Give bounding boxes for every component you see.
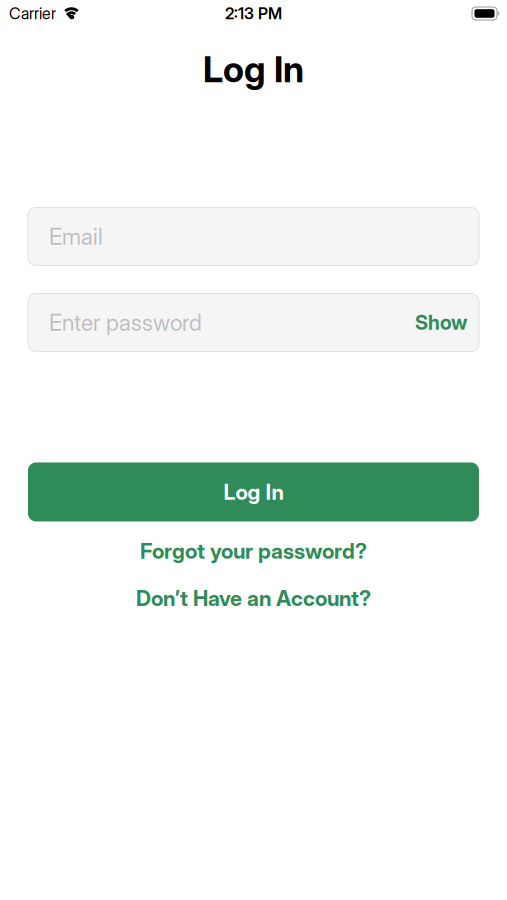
staticText: 2:13 PM <box>225 4 282 23</box>
staticText: Log In <box>223 479 283 505</box>
staticText: Enter password <box>49 309 202 336</box>
button[interactable]: Log In <box>0 462 507 521</box>
staticText: Email <box>49 223 103 250</box>
staticText: Forgot your password? <box>140 538 367 564</box>
button[interactable]: Don’t Have an Account? <box>136 586 371 611</box>
staticText: Log In <box>203 48 304 90</box>
staticText: Show <box>415 311 467 334</box>
staticText: Carrier <box>9 4 56 23</box>
button[interactable]: Show <box>415 311 467 334</box>
staticText: Don’t Have an Account? <box>136 586 371 611</box>
button[interactable]: Forgot your password? <box>140 538 367 564</box>
